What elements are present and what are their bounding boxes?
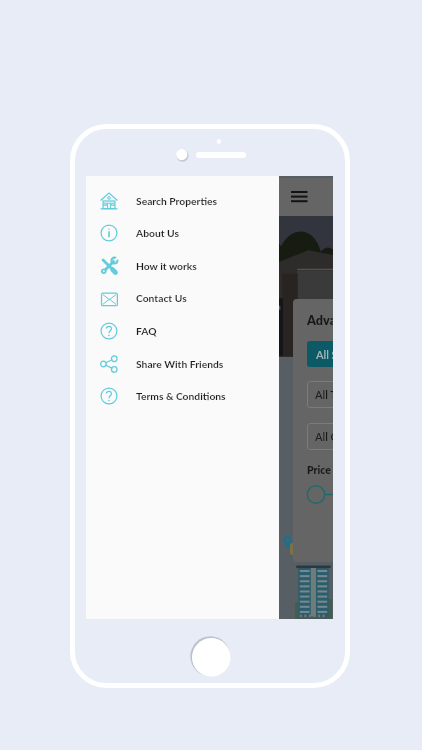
staticText: All Suburbs [316,348,333,361]
button[interactable]: About Us [86,217,279,249]
button[interactable]: Price range slider [293,485,333,505]
staticText: How it works [136,260,197,272]
staticText: Contact Us [136,292,187,304]
staticText: FAQ [136,325,157,337]
staticText: Price Range [307,464,333,476]
button[interactable]: All Suburbs [307,341,333,367]
staticText: Advanced Search [307,313,333,328]
staticText: Share With Friends [136,358,224,370]
button[interactable]: Search Properties [86,185,279,217]
staticText: About Us [136,227,179,239]
button[interactable]: Contact Us [86,282,279,314]
staticText: Terms & Conditions [136,390,226,402]
staticText: All Types [315,388,333,401]
staticText: Search Properties [136,195,218,207]
button[interactable]: All Types [307,381,333,408]
button[interactable]: Terms & Conditions [86,380,279,412]
button[interactable]: Share With Friends [86,348,279,380]
button[interactable]: FAQ [86,315,279,347]
button[interactable]: All Categories [307,423,333,450]
button[interactable]: Open navigation menu [290,191,309,203]
staticText: All Categories [315,430,333,443]
button[interactable]: How it works [86,250,279,282]
